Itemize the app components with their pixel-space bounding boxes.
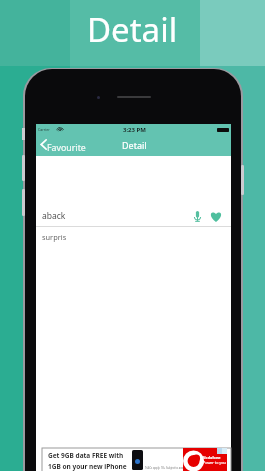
- button[interactable]: Get 9GB data FREE with: [42, 448, 231, 471]
- staticText: 3:23 PM: [123, 126, 146, 134]
- staticText: surpris: [42, 232, 67, 242]
- staticText: Favourite: [47, 142, 86, 154]
- staticText: aback: [42, 210, 66, 222]
- staticText: Ts&Cs apply. 18+ Subject to availability…: [145, 466, 193, 470]
- button[interactable]: surpris: [36, 227, 231, 247]
- staticText: Vodafone: [203, 455, 221, 460]
- staticText: 1GB on your new iPhone: [48, 462, 127, 471]
- staticText: Power to you: [203, 460, 226, 465]
- other: Speak: [194, 211, 201, 222]
- button[interactable]: Favourite: [36, 133, 92, 156]
- button[interactable]: aback: [36, 205, 231, 226]
- staticText: Detail: [87, 7, 178, 52]
- other: Favourite: [210, 211, 222, 222]
- staticText: Carrier: [38, 127, 50, 132]
- staticText: Get 9GB data FREE with: [48, 451, 124, 460]
- staticText: Detail: [122, 139, 147, 151]
